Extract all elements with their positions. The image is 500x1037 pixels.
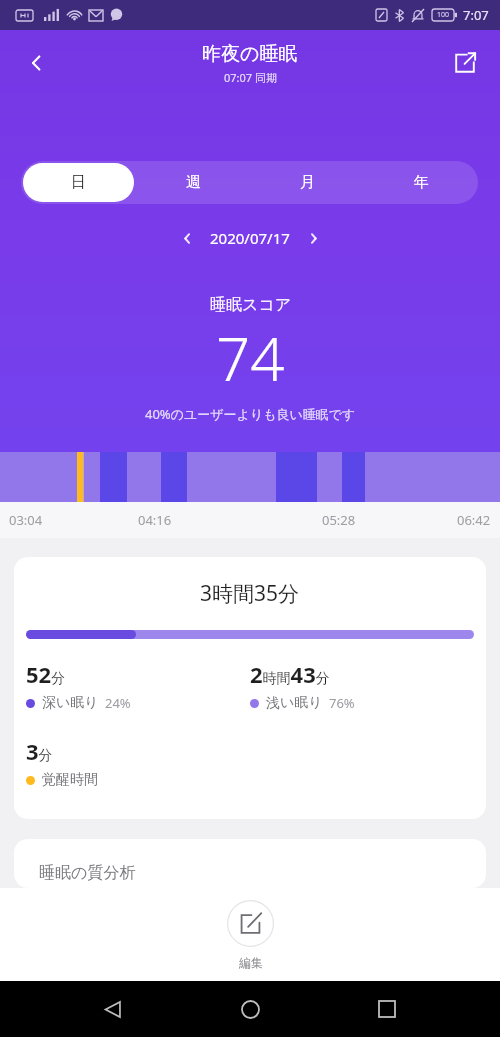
staticText: 年 [414, 173, 429, 192]
staticText: 昨夜の睡眠 [202, 42, 298, 66]
button[interactable]: 編集 [223, 896, 278, 974]
staticText: 03:04 [9, 511, 43, 529]
button[interactable]: 睡眠の質分析 [14, 839, 486, 888]
staticText: 浅い眠り [266, 694, 323, 712]
button[interactable]: 年 [366, 163, 476, 202]
staticText: 深い眠り [42, 694, 99, 712]
staticText: 24% [105, 694, 131, 712]
staticText: 74 [216, 317, 285, 399]
button[interactable]: 戻る [14, 40, 60, 86]
staticText: 日 [71, 173, 86, 192]
staticText: 2時間43分 [250, 659, 330, 689]
staticText: 06:42 [457, 511, 491, 529]
staticText: 2020/07/17 [210, 228, 290, 248]
button[interactable]: 3時間35分 [14, 557, 486, 819]
staticText: 週 [186, 173, 201, 192]
button[interactable]: 週 [138, 163, 248, 202]
button[interactable]: 前の日 [170, 221, 204, 255]
button[interactable]: ホーム [226, 985, 274, 1033]
button[interactable]: 履歴 [363, 985, 411, 1033]
button[interactable]: 月 [252, 163, 362, 202]
staticText: 編集 [239, 955, 263, 970]
staticText: 76% [329, 694, 355, 712]
staticText: 7:07 [463, 6, 489, 24]
staticText: 3時間35分 [200, 579, 300, 608]
staticText: 05:28 [322, 511, 356, 529]
staticText: 3分 [26, 736, 53, 766]
staticText: 52分 [26, 659, 66, 689]
staticText: 40%のユーザーよりも良い睡眠です [145, 405, 356, 423]
button[interactable]: 共有 [442, 40, 488, 86]
button[interactable]: 戻る [89, 985, 137, 1033]
staticText: 睡眠スコア [210, 295, 292, 315]
staticText: 覚醒時間 [42, 771, 98, 789]
staticText: 04:16 [138, 511, 172, 529]
staticText: 100 [437, 10, 450, 20]
staticText: 07:07 同期 [224, 70, 277, 85]
button[interactable]: 日 [23, 163, 134, 202]
staticText: 月 [300, 173, 315, 192]
staticText: 睡眠の質分析 [39, 863, 136, 883]
button[interactable]: 次の日 [296, 221, 330, 255]
